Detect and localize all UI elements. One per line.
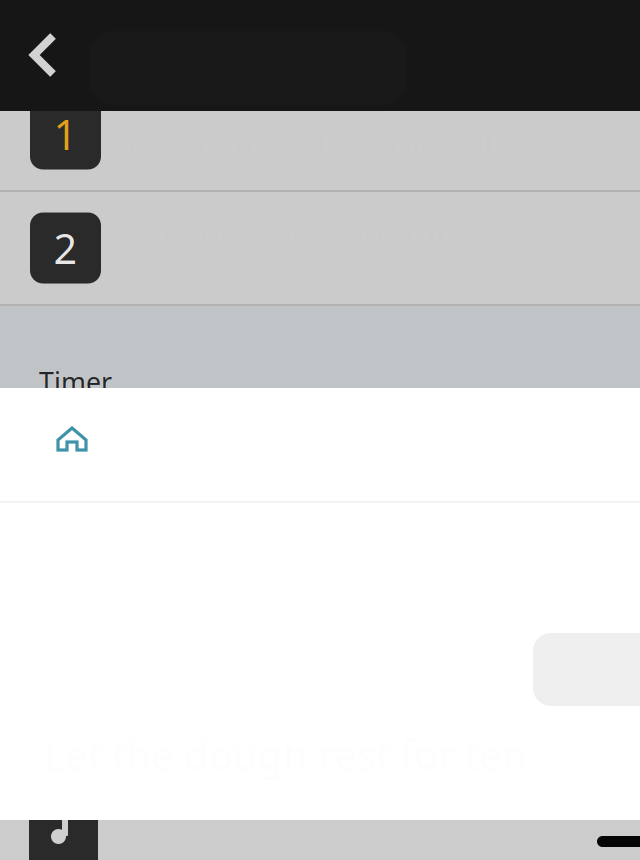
button[interactable]: Knead for ten minutes bbox=[0, 192, 640, 304]
staticText: Timer bbox=[39, 364, 112, 399]
button[interactable]: Now Playing bbox=[0, 820, 69, 860]
button[interactable]: Back bbox=[0, 12, 80, 98]
button[interactable] bbox=[0, 388, 640, 501]
staticText: 2 bbox=[53, 221, 77, 275]
button[interactable]: Mix flour, water and salt bbox=[0, 78, 640, 190]
button[interactable]: Timer bbox=[0, 306, 640, 388]
staticText: 1 bbox=[53, 107, 77, 161]
